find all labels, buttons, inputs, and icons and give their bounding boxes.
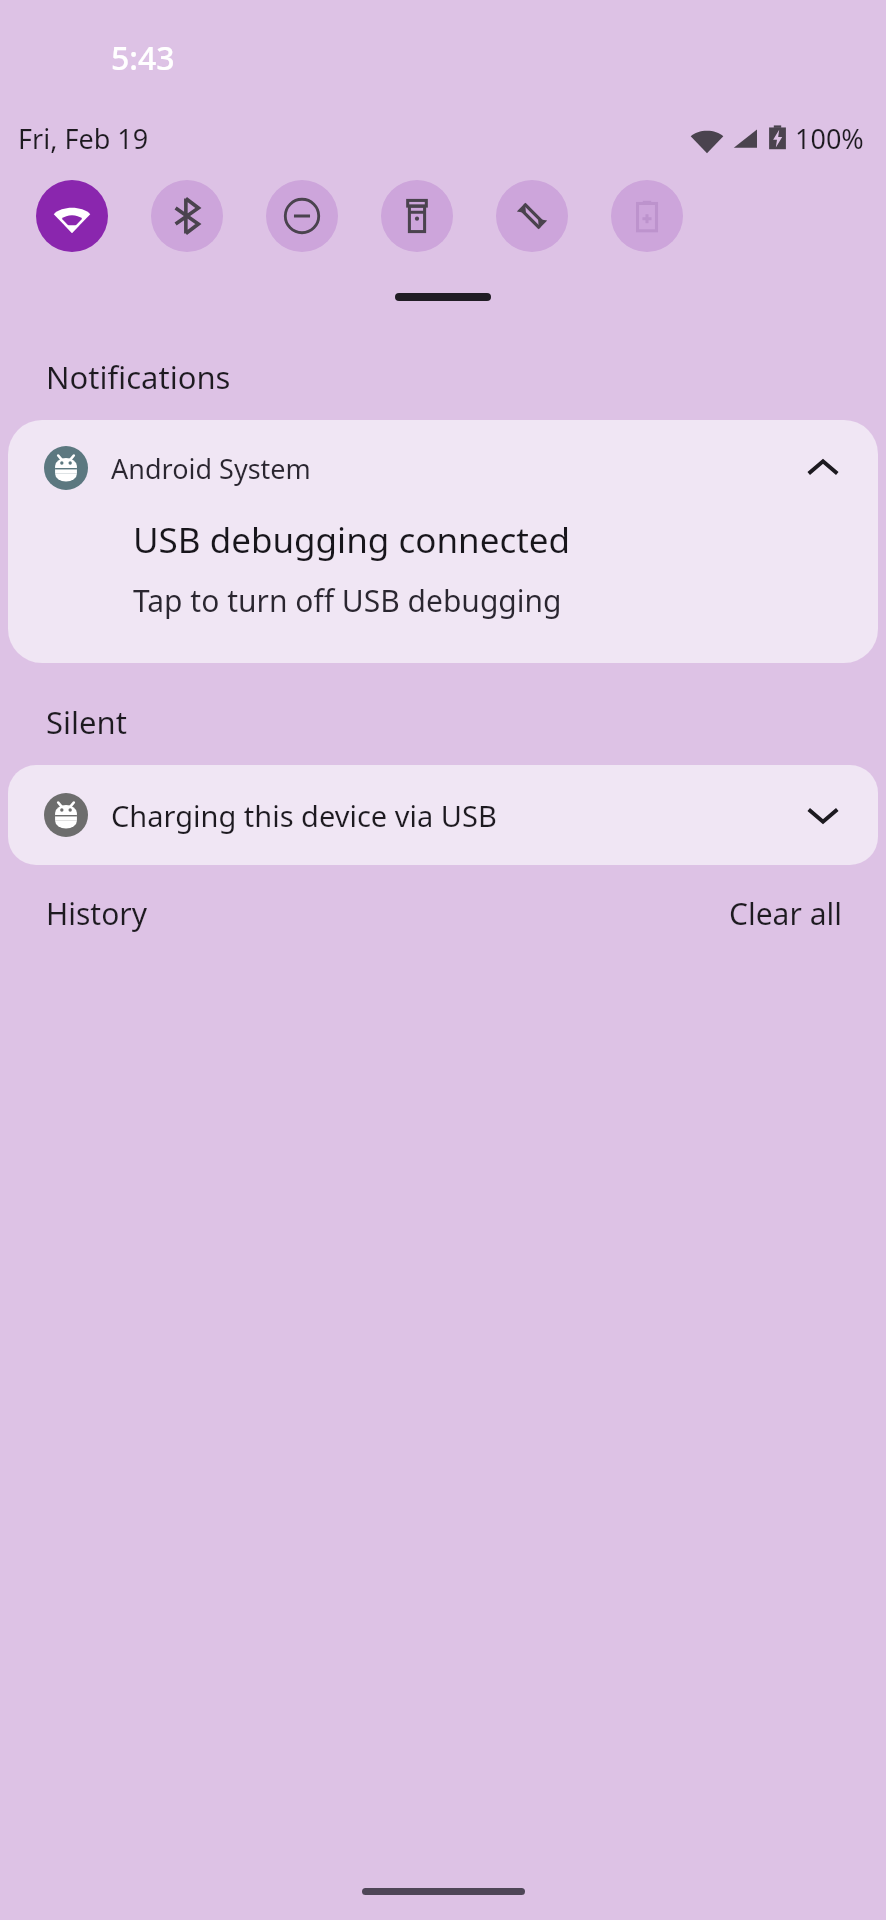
button[interactable]: Collapse	[796, 441, 850, 495]
button[interactable]: Auto rotate	[496, 180, 568, 252]
button[interactable]: Wi-Fi	[36, 180, 108, 252]
staticText: Charging this device via USB	[111, 796, 497, 835]
button[interactable]: Android System	[8, 420, 878, 663]
staticText: Android System	[111, 450, 311, 487]
staticText: Fri, Feb 19	[18, 120, 149, 157]
button[interactable]: Charging this device via USB	[8, 765, 878, 865]
staticText: Tap to turn off USB debugging	[133, 580, 562, 621]
button[interactable]: Expand	[796, 788, 850, 842]
button[interactable]: History	[46, 893, 148, 934]
staticText: 5:43	[111, 36, 175, 80]
button[interactable]: Clear all	[729, 893, 842, 934]
staticText: Silent	[46, 701, 127, 743]
staticText: Notifications	[46, 356, 231, 398]
staticText: 100%	[795, 120, 864, 157]
button[interactable]: Bluetooth	[151, 180, 223, 252]
button[interactable]: Do Not Disturb	[266, 180, 338, 252]
button[interactable]: Battery Saver	[611, 180, 683, 252]
button[interactable]: Flashlight	[381, 180, 453, 252]
staticText: USB debugging connected	[133, 516, 571, 564]
staticText: Clear all	[729, 893, 842, 934]
staticText: History	[46, 893, 148, 934]
